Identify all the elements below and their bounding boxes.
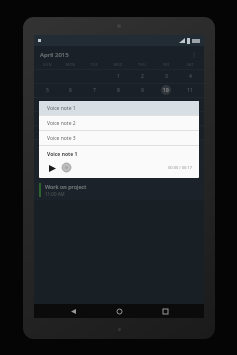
staticText: 5 xyxy=(46,87,49,94)
staticText: 23 xyxy=(139,115,145,122)
button[interactable]: 11 xyxy=(178,83,202,97)
staticText: 8 xyxy=(117,87,120,94)
button[interactable]: 23 xyxy=(130,111,154,125)
button[interactable]: 1 xyxy=(106,69,130,83)
staticText: 26 xyxy=(45,129,51,136)
button[interactable]: Recents xyxy=(158,304,172,318)
staticText: SAT xyxy=(178,62,202,67)
staticText: Work on project xyxy=(45,183,87,190)
staticText: SUN xyxy=(36,62,59,67)
button[interactable]: Exercise at the gym xyxy=(34,160,204,180)
button[interactable]: 18 xyxy=(178,97,202,111)
button[interactable]: 29 xyxy=(106,125,130,139)
button[interactable]: 20 xyxy=(59,111,82,125)
button[interactable]: 8 xyxy=(106,83,130,97)
staticText: Voice note 2 xyxy=(47,120,76,127)
button[interactable]: Voice note 2 xyxy=(39,116,199,130)
staticText: 30 xyxy=(139,129,145,136)
button[interactable]: Record xyxy=(61,162,72,173)
staticText: 10 xyxy=(163,87,169,94)
staticText: 27 xyxy=(68,129,74,136)
button[interactable]: 27 xyxy=(59,125,82,139)
button[interactable]: 17 xyxy=(154,97,178,111)
staticText: WED xyxy=(106,62,130,67)
button[interactable]: 16 xyxy=(130,97,154,111)
button[interactable]: 22 xyxy=(106,111,130,125)
staticText: 7 xyxy=(93,87,96,94)
button[interactable]: Back xyxy=(66,304,80,318)
button[interactable]: Play xyxy=(47,163,57,173)
button[interactable] xyxy=(178,125,202,139)
button[interactable]: 2 xyxy=(130,69,154,83)
button[interactable]: Home xyxy=(112,304,126,318)
button[interactable]: 14 xyxy=(82,97,106,111)
button[interactable]: 6 xyxy=(59,83,82,97)
button[interactable] xyxy=(154,125,178,139)
button[interactable]: 30 xyxy=(130,125,154,139)
staticText: THU xyxy=(130,62,154,67)
button[interactable]: 7 xyxy=(82,83,106,97)
staticText: 4 xyxy=(189,73,192,80)
button[interactable]: 13 xyxy=(59,97,82,111)
staticText: 13 xyxy=(68,101,74,108)
button[interactable]: 4 xyxy=(178,69,202,83)
staticText: 20 xyxy=(68,115,74,122)
button[interactable]: 25 xyxy=(178,111,202,125)
staticText: 9 xyxy=(141,87,144,94)
button[interactable]: 24 xyxy=(154,111,178,125)
staticText: 11:00 AM xyxy=(45,191,65,197)
staticText: 6 xyxy=(69,87,72,94)
button[interactable]: 19 xyxy=(36,111,59,125)
staticText: 21 xyxy=(91,115,97,122)
button[interactable]: Work on project xyxy=(34,180,204,200)
button[interactable]: Voice note 3 xyxy=(39,131,199,145)
staticText: Voice note 3 xyxy=(47,135,76,142)
staticText: Voice note 1 xyxy=(47,151,78,158)
staticText: 25 xyxy=(187,115,193,122)
staticText: 6:00 PM xyxy=(45,171,62,177)
button[interactable]: More options xyxy=(190,51,198,59)
button[interactable]: Voice note 1 xyxy=(39,101,199,115)
staticText: FRI xyxy=(154,62,178,67)
button[interactable]: 9 xyxy=(130,83,154,97)
staticText: April 2015 xyxy=(40,51,69,59)
staticText: Take medication xyxy=(45,143,88,150)
staticText: 3 xyxy=(165,73,168,80)
button[interactable]: 12 xyxy=(36,97,59,111)
staticText: 00:00 / 00:17 xyxy=(168,165,193,170)
button[interactable]: Take medication xyxy=(34,140,204,160)
staticText: TUE xyxy=(82,62,106,67)
staticText: Exercise at the gym xyxy=(45,163,96,170)
staticText: 2 xyxy=(141,73,144,80)
staticText: 9:00 AM xyxy=(45,151,63,157)
button[interactable]: 3 xyxy=(154,69,178,83)
staticText: 22 xyxy=(115,115,121,122)
button[interactable]: 26 xyxy=(36,125,59,139)
staticText: 12 xyxy=(45,101,51,108)
staticText: Voice note 1 xyxy=(47,105,76,112)
button[interactable]: 10 xyxy=(154,83,178,97)
button[interactable]: 5 xyxy=(36,83,59,97)
staticText: 24 xyxy=(163,115,169,122)
staticText: 11 xyxy=(187,87,193,94)
staticText: 28 xyxy=(91,129,97,136)
button[interactable]: 15 xyxy=(106,97,130,111)
staticText: MON xyxy=(59,62,82,67)
staticText: 1 xyxy=(117,73,120,80)
staticText: 29 xyxy=(115,129,121,136)
button[interactable]: 21 xyxy=(82,111,106,125)
button[interactable]: 28 xyxy=(82,125,106,139)
staticText: 19 xyxy=(45,115,51,122)
